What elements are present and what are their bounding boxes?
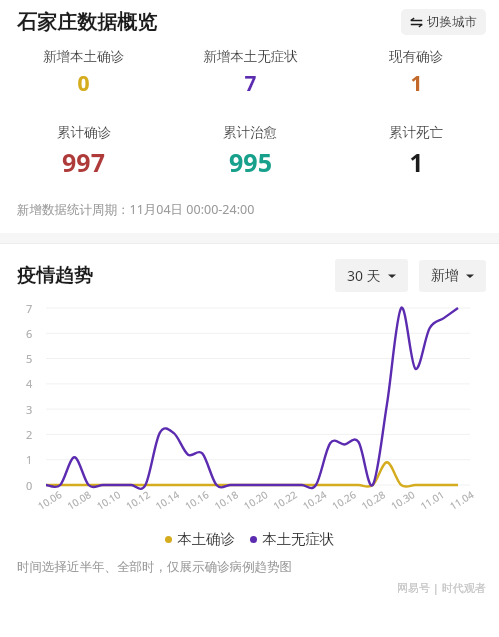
button[interactable]: 30 天 — [335, 259, 408, 292]
staticText: 石家庄数据概览 — [17, 10, 157, 35]
staticText: 新增 — [431, 267, 459, 285]
staticText: 累计治愈 — [223, 124, 277, 141]
staticText: 现有确诊 — [389, 48, 443, 65]
button[interactable]: 新增本土无症状 — [167, 48, 333, 98]
staticText: 997 — [62, 145, 105, 179]
button[interactable]: 新增本土确诊 — [0, 48, 167, 98]
button[interactable]: 现有确诊 — [333, 48, 499, 98]
other: 切换城市 — [410, 16, 423, 29]
staticText: 30 天 — [347, 266, 381, 285]
staticText: 7 — [244, 69, 257, 98]
staticText: 1 — [409, 145, 424, 179]
staticText: 新增本土确诊 — [43, 48, 124, 65]
staticText: 1 — [410, 69, 423, 98]
button[interactable]: 本土无症状 — [250, 530, 335, 548]
staticText: 新增数据统计周期：11月04日 00:00-24:00 — [17, 201, 255, 218]
button[interactable]: 切换城市 — [401, 9, 486, 35]
button[interactable]: 累计死亡 — [333, 124, 499, 179]
button[interactable]: 本土确诊 — [165, 530, 235, 548]
staticText: 0 — [77, 69, 90, 98]
button[interactable]: 累计确诊 — [0, 124, 167, 179]
staticText: 时间选择近半年、全部时，仅展示确诊病例趋势图 — [17, 559, 292, 575]
staticText: 累计确诊 — [57, 124, 111, 141]
button[interactable]: 新增 — [419, 260, 486, 292]
button[interactable]: 累计治愈 — [167, 124, 333, 179]
staticText: 新增本土无症状 — [203, 48, 298, 65]
staticText: 切换城市 — [427, 14, 477, 30]
staticText: 网易号 | 时代观者 — [397, 580, 486, 595]
staticText: 995 — [229, 145, 272, 179]
staticText: 疫情趋势 — [17, 264, 93, 288]
staticText: 本土无症状 — [262, 530, 335, 548]
staticText: 本土确诊 — [177, 530, 235, 548]
staticText: 累计死亡 — [389, 124, 443, 141]
